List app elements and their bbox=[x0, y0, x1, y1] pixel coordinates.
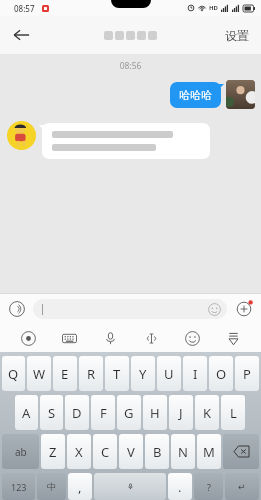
button[interactable]: A bbox=[15, 395, 38, 430]
button[interactable]: P bbox=[235, 356, 259, 391]
staticText: Z bbox=[49, 443, 57, 461]
staticText: 08:57 bbox=[14, 3, 35, 14]
button[interactable]: T bbox=[105, 356, 129, 391]
staticText: X bbox=[75, 443, 83, 461]
staticText: ? bbox=[207, 481, 211, 493]
button[interactable]: 123 bbox=[2, 473, 35, 500]
staticText: D bbox=[72, 404, 82, 422]
button[interactable]: Backspace bbox=[223, 434, 259, 469]
button[interactable]: Voice bbox=[6, 298, 28, 320]
staticText: W bbox=[33, 365, 46, 383]
button[interactable]: W bbox=[27, 356, 51, 391]
staticText: ab bbox=[15, 445, 27, 459]
button[interactable]: ? bbox=[194, 473, 223, 500]
staticText: 哈哈哈 bbox=[179, 88, 212, 102]
button[interactable]: V bbox=[119, 434, 143, 469]
button[interactable]: I bbox=[183, 356, 207, 391]
staticText: Y bbox=[139, 365, 147, 383]
button[interactable]: ↵ bbox=[225, 473, 259, 500]
staticText: R bbox=[87, 365, 96, 383]
staticText: E bbox=[61, 365, 69, 383]
staticText: A bbox=[22, 404, 31, 422]
staticText: T bbox=[113, 365, 121, 383]
staticText: ↵ bbox=[238, 482, 246, 492]
button[interactable]: E bbox=[53, 356, 77, 391]
button[interactable]: Input method bbox=[15, 325, 41, 351]
button[interactable]: ab bbox=[2, 434, 39, 469]
staticText: , bbox=[78, 478, 82, 496]
staticText: G bbox=[124, 404, 134, 422]
staticText: 123 bbox=[11, 481, 27, 493]
button[interactable]: 哈哈哈 bbox=[170, 82, 221, 108]
staticText: S bbox=[48, 404, 56, 422]
staticText: H bbox=[150, 404, 160, 422]
button[interactable]: . bbox=[168, 473, 192, 500]
staticText: Q bbox=[8, 365, 19, 383]
staticText: 08:56 bbox=[0, 60, 261, 72]
button[interactable]: Y bbox=[131, 356, 155, 391]
button[interactable] bbox=[42, 123, 210, 159]
button[interactable]: Avatar bbox=[7, 121, 36, 150]
button[interactable]: 中 bbox=[37, 473, 66, 500]
button[interactable]: More bbox=[233, 298, 255, 320]
button[interactable]: Keyboard bbox=[56, 325, 82, 351]
staticText: B bbox=[153, 443, 162, 461]
button[interactable]: Space bbox=[94, 473, 166, 500]
staticText: M bbox=[203, 443, 215, 461]
button[interactable]: G bbox=[117, 395, 141, 430]
button[interactable]: Microphone bbox=[97, 325, 123, 351]
button[interactable]: Back bbox=[4, 18, 38, 52]
button[interactable]: 设置 bbox=[221, 22, 253, 49]
staticText: O bbox=[216, 365, 227, 383]
staticText: L bbox=[230, 404, 237, 422]
button[interactable]: K bbox=[195, 395, 219, 430]
button[interactable]: M bbox=[197, 434, 221, 469]
button[interactable]: F bbox=[91, 395, 115, 430]
staticText: C bbox=[101, 443, 110, 461]
button[interactable]: Emoji bbox=[33, 299, 227, 319]
button[interactable]: N bbox=[171, 434, 195, 469]
button[interactable]: Z bbox=[41, 434, 65, 469]
staticText: 中 bbox=[47, 481, 56, 492]
button[interactable]: Q bbox=[2, 356, 25, 391]
button[interactable]: Handwriting bbox=[138, 325, 164, 351]
button[interactable]: H bbox=[143, 395, 167, 430]
staticText: K bbox=[203, 404, 212, 422]
staticText: P bbox=[243, 365, 251, 383]
staticText: I bbox=[193, 365, 198, 383]
staticText: . bbox=[178, 478, 182, 496]
staticText: V bbox=[127, 443, 135, 461]
staticText: HD bbox=[209, 4, 218, 12]
staticText: J bbox=[179, 404, 183, 422]
button[interactable]: Emoji bbox=[179, 325, 205, 351]
staticText: F bbox=[100, 404, 107, 422]
staticText: N bbox=[178, 443, 188, 461]
button[interactable]: O bbox=[209, 356, 233, 391]
button[interactable]: C bbox=[93, 434, 117, 469]
button[interactable]: J bbox=[169, 395, 193, 430]
button[interactable]: S bbox=[40, 395, 63, 430]
button[interactable]: U bbox=[157, 356, 181, 391]
staticText: 设置 bbox=[225, 28, 249, 43]
button[interactable]: Avatar bbox=[226, 80, 255, 109]
button[interactable]: R bbox=[79, 356, 103, 391]
button[interactable]: X bbox=[67, 434, 91, 469]
staticText: U bbox=[164, 365, 174, 383]
button[interactable]: , bbox=[68, 473, 92, 500]
button[interactable]: Hide keyboard bbox=[220, 325, 246, 351]
button[interactable]: Emoji bbox=[208, 303, 221, 316]
button[interactable]: L bbox=[221, 395, 245, 430]
button[interactable]: B bbox=[145, 434, 169, 469]
button[interactable]: D bbox=[65, 395, 89, 430]
